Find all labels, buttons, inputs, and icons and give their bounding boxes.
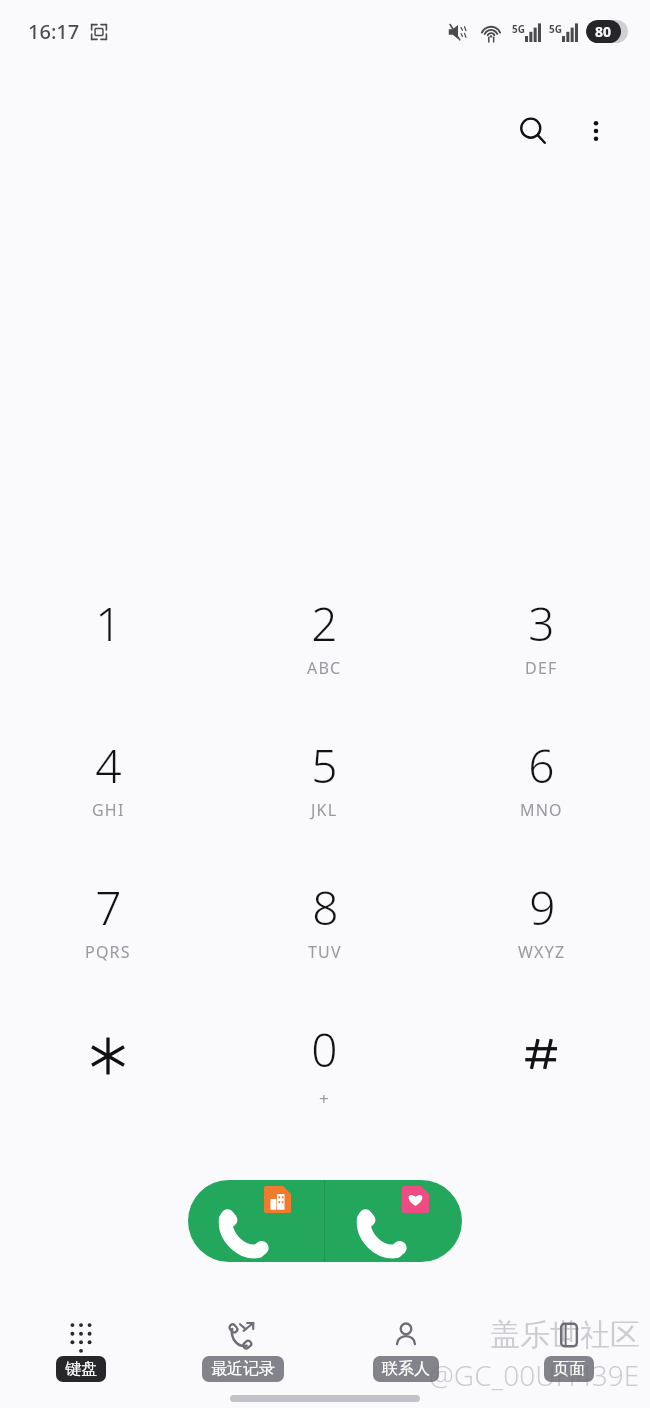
staticText: 5G: [549, 22, 562, 36]
staticText: TUV: [308, 941, 342, 963]
staticText: 8: [312, 876, 339, 939]
button[interactable]: Call with SIM 2: [325, 1180, 462, 1262]
button[interactable]: 页面: [487, 1312, 650, 1400]
staticText: 3: [528, 592, 555, 655]
staticText: @GC_00UH439E: [429, 1356, 640, 1394]
staticText: 盖乐世社区: [490, 1316, 640, 1354]
staticText: 80: [595, 22, 612, 41]
staticText: DEF: [525, 657, 558, 679]
staticText: 联系人: [382, 1359, 430, 1379]
staticText: +: [319, 1087, 330, 1110]
staticText: 0: [311, 1018, 338, 1081]
button[interactable]: [0, 1018, 216, 1160]
button[interactable]: 9: [433, 876, 650, 1018]
staticText: 16:17: [28, 18, 80, 45]
staticText: 7: [95, 876, 122, 939]
button[interactable]: 最近记录: [162, 1312, 324, 1400]
button[interactable]: 联系人: [324, 1312, 487, 1400]
button[interactable]: 7: [0, 876, 216, 1018]
staticText: 键盘: [65, 1359, 97, 1379]
button[interactable]: 5: [216, 734, 433, 876]
button[interactable]: 0: [216, 1018, 433, 1160]
button[interactable]: [433, 1018, 650, 1160]
staticText: 页面: [553, 1359, 585, 1379]
button[interactable]: Search: [502, 100, 564, 162]
staticText: 5: [311, 734, 338, 797]
button[interactable]: 3: [433, 592, 650, 734]
button[interactable]: More options: [568, 103, 624, 159]
staticText: 9: [529, 876, 556, 939]
staticText: 4: [95, 734, 122, 797]
staticText: 5G: [512, 22, 525, 36]
staticText: PQRS: [85, 941, 131, 963]
staticText: GHI: [92, 799, 125, 821]
button[interactable]: 2: [216, 592, 433, 734]
staticText: ABC: [307, 657, 342, 679]
staticText: 6: [528, 734, 555, 797]
staticText: 最近记录: [211, 1359, 275, 1379]
staticText: MNO: [520, 799, 563, 821]
button[interactable]: 键盘: [0, 1312, 162, 1400]
staticText: 2: [311, 592, 338, 655]
button[interactable]: 6: [433, 734, 650, 876]
staticText: 1: [95, 592, 122, 655]
button[interactable]: 4: [0, 734, 216, 876]
button[interactable]: 1: [0, 592, 216, 734]
button[interactable]: Call with SIM 1: [188, 1180, 324, 1262]
staticText: WXYZ: [518, 941, 566, 963]
staticText: JKL: [311, 799, 338, 821]
button[interactable]: 8: [216, 876, 433, 1018]
